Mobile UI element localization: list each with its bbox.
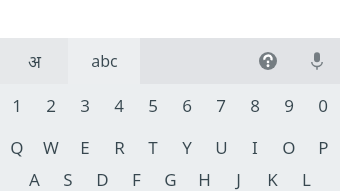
button[interactable]: F — [119, 168, 153, 191]
button[interactable]: 9 — [272, 84, 306, 126]
button[interactable]: Q — [0, 126, 34, 168]
button[interactable]: J — [221, 168, 255, 191]
button[interactable]: S — [51, 168, 85, 191]
button[interactable]: E — [68, 126, 102, 168]
staticText: G — [164, 168, 177, 191]
staticText: H — [198, 168, 211, 191]
button[interactable]: L — [289, 168, 323, 191]
staticText: A — [29, 168, 40, 191]
staticText: O — [282, 136, 296, 159]
staticText: S — [63, 168, 73, 191]
button[interactable]: 6 — [170, 84, 204, 126]
button[interactable]: I — [238, 126, 272, 168]
staticText: 4 — [114, 94, 124, 117]
button[interactable]: abc — [68, 38, 140, 84]
staticText: J — [236, 168, 241, 191]
staticText: 5 — [148, 94, 158, 117]
button[interactable]: G — [153, 168, 187, 191]
button[interactable]: 5 — [136, 84, 170, 126]
staticText: D — [96, 168, 109, 191]
staticText: E — [80, 136, 90, 159]
button[interactable]: 4 — [102, 84, 136, 126]
staticText: I — [252, 136, 258, 159]
staticText: R — [114, 136, 125, 159]
staticText: 1 — [12, 94, 22, 117]
staticText: अ — [28, 50, 41, 73]
staticText: W — [43, 136, 59, 159]
button[interactable]: Help — [250, 44, 286, 78]
staticText: 8 — [250, 94, 260, 117]
staticText: T — [148, 136, 158, 159]
staticText: 7 — [216, 94, 226, 117]
staticText: 9 — [284, 94, 294, 117]
staticText: abc — [91, 50, 118, 72]
button[interactable]: U — [204, 126, 238, 168]
staticText: 6 — [182, 94, 192, 117]
button[interactable]: T — [136, 126, 170, 168]
button[interactable]: 2 — [34, 84, 68, 126]
button[interactable]: 0 — [306, 84, 340, 126]
button[interactable]: D — [85, 168, 119, 191]
staticText: P — [318, 136, 329, 159]
staticText: L — [302, 168, 311, 191]
button[interactable]: O — [272, 126, 306, 168]
button[interactable]: A — [17, 168, 51, 191]
staticText: Y — [182, 136, 192, 159]
button[interactable]: 8 — [238, 84, 272, 126]
staticText: F — [132, 168, 141, 191]
button[interactable]: Voice input — [300, 44, 334, 78]
button[interactable]: 3 — [68, 84, 102, 126]
button[interactable]: W — [34, 126, 68, 168]
button[interactable]: 7 — [204, 84, 238, 126]
staticText: K — [267, 168, 278, 191]
staticText: 2 — [46, 94, 56, 117]
button[interactable]: 1 — [0, 84, 34, 126]
staticText: U — [215, 136, 228, 159]
button[interactable]: R — [102, 126, 136, 168]
staticText: 3 — [80, 94, 90, 117]
button[interactable]: P — [306, 126, 340, 168]
staticText: Q — [10, 136, 24, 159]
button[interactable]: K — [255, 168, 289, 191]
button[interactable]: अ — [0, 38, 68, 84]
staticText: 0 — [318, 94, 328, 117]
button[interactable]: H — [187, 168, 221, 191]
button[interactable]: Y — [170, 126, 204, 168]
